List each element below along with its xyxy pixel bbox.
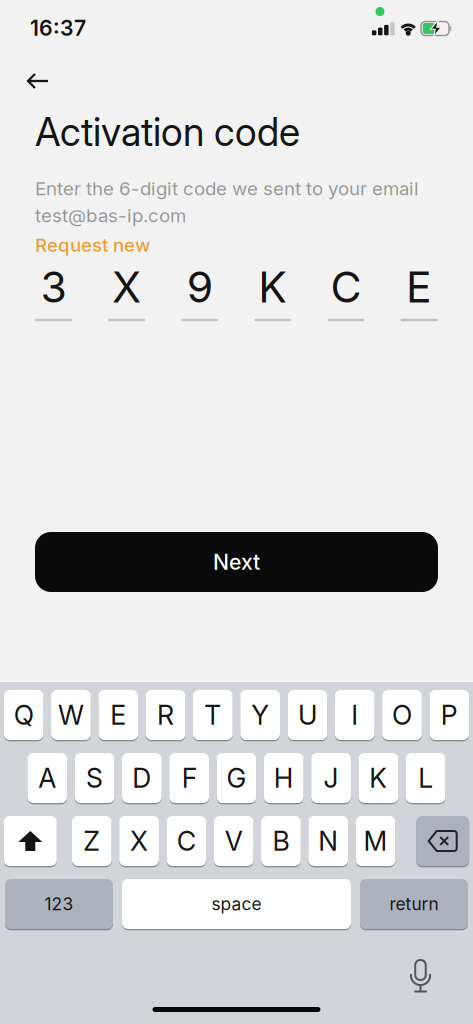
button[interactable]: U: [288, 689, 327, 741]
staticText: return: [389, 894, 438, 914]
button[interactable]: V: [214, 815, 253, 867]
button[interactable]: I: [335, 689, 375, 741]
staticText: Enter the 6-digit code we sent to your e…: [35, 177, 419, 199]
button[interactable]: K: [358, 752, 398, 804]
staticText: 3: [40, 262, 66, 312]
button[interactable]: return: [360, 878, 468, 930]
staticText: F: [182, 762, 197, 794]
staticText: A: [38, 762, 56, 794]
staticText: K: [258, 262, 287, 312]
button[interactable]: T: [193, 689, 233, 741]
staticText: T: [204, 699, 221, 731]
staticText: O: [392, 699, 412, 731]
button[interactable]: E: [98, 689, 138, 741]
staticText: W: [58, 699, 84, 731]
staticText: D: [132, 762, 151, 794]
staticText: Z: [83, 825, 100, 857]
button[interactable]: X: [119, 815, 159, 867]
staticText: H: [274, 762, 294, 794]
button[interactable]: F: [169, 752, 209, 804]
staticText: E: [110, 699, 126, 731]
staticText: J: [323, 762, 338, 794]
staticText: R: [157, 699, 174, 731]
staticText: X: [130, 825, 148, 857]
button[interactable]: 123: [5, 878, 113, 930]
staticText: 9: [187, 262, 213, 312]
button[interactable]: Delete: [416, 815, 469, 867]
button[interactable]: H: [264, 752, 304, 804]
button[interactable]: Request new: [35, 234, 150, 256]
button[interactable]: M: [356, 815, 395, 867]
button[interactable]: N: [308, 815, 348, 867]
button[interactable]: L: [406, 752, 445, 804]
staticText: 123: [44, 894, 73, 914]
staticText: 16:37: [30, 15, 86, 41]
staticText: Next: [213, 549, 260, 575]
button[interactable]: W: [51, 689, 91, 741]
button[interactable]: B: [261, 815, 301, 867]
staticText: S: [86, 762, 103, 794]
button[interactable]: D: [122, 752, 162, 804]
staticText: Q: [14, 699, 34, 731]
staticText: N: [318, 825, 338, 857]
staticText: Activation code: [35, 109, 300, 155]
staticText: E: [406, 262, 432, 312]
button[interactable]: Q: [4, 689, 43, 741]
staticText: I: [351, 699, 358, 731]
button[interactable]: Dictation: [409, 960, 433, 993]
staticText: K: [369, 762, 387, 794]
staticText: P: [441, 699, 458, 731]
button[interactable]: Shift: [4, 815, 57, 867]
button[interactable]: Y: [240, 689, 280, 741]
staticText: space: [211, 894, 261, 914]
staticText: B: [272, 825, 289, 857]
button[interactable]: space: [122, 878, 351, 930]
button[interactable]: P: [429, 689, 469, 741]
button[interactable]: A: [27, 752, 67, 804]
staticText: M: [363, 825, 387, 857]
button[interactable]: Next: [35, 532, 438, 592]
staticText: V: [225, 825, 243, 857]
button[interactable]: R: [146, 689, 185, 741]
staticText: Request new: [35, 234, 150, 256]
staticText: U: [298, 699, 317, 731]
staticText: L: [418, 762, 433, 794]
button[interactable]: Z: [72, 815, 112, 867]
staticText: X: [112, 262, 141, 312]
staticText: Y: [251, 699, 269, 731]
button[interactable]: J: [311, 752, 351, 804]
staticText: G: [226, 762, 246, 794]
button[interactable]: G: [217, 752, 256, 804]
button[interactable]: O: [382, 689, 422, 741]
button[interactable]: C: [166, 815, 206, 867]
button[interactable]: Back: [21, 69, 55, 93]
staticText: C: [177, 825, 196, 857]
button[interactable]: S: [75, 752, 114, 804]
staticText: test@bas-ip.com: [35, 204, 186, 226]
staticText: C: [330, 262, 361, 312]
